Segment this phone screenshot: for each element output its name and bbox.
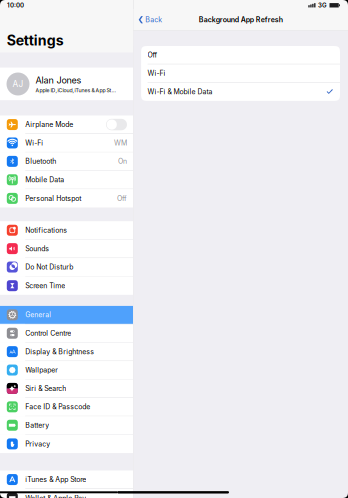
button[interactable]: Wallpaper [0,361,133,379]
button[interactable]: Notifications [0,221,133,240]
staticText: Sounds [25,244,49,253]
staticText: Back [145,15,162,24]
staticText: Face ID & Passcode [25,403,90,411]
staticText: Screen Time [25,281,65,290]
staticText: iTunes & App Store [25,475,86,484]
button[interactable]: Wi-Fi & Mobile Data [141,83,340,101]
button[interactable]: Sounds [0,240,133,258]
staticText: Wallpaper [25,366,58,374]
staticText: Notifications [25,226,67,234]
staticText: Personal Hotspot [25,194,81,203]
button[interactable]: Privacy [0,435,133,453]
staticText: Apple ID, iCloud, iTunes & App St… [35,87,115,93]
staticText: Mobile Data [25,176,64,184]
staticText: 3G [318,2,327,9]
button[interactable]: iTunes & App Store [0,471,133,489]
staticText: 10:00 [7,2,24,9]
staticText: AJ [12,79,23,89]
button[interactable]: Screen Time [0,276,133,295]
button[interactable]: Siri & Search [0,379,133,398]
button[interactable]: Mobile Data [0,171,133,189]
button[interactable]: Wi-Fi [141,64,340,83]
staticText: Airplane Mode [25,120,73,129]
staticText: Siri & Search [25,384,66,393]
staticText: On [118,157,127,166]
staticText: Alan Jones [35,75,81,86]
staticText: Background App Refresh [199,15,283,24]
staticText: Wi-Fi [148,69,166,77]
button[interactable]: Wallet & Apple Pay [0,489,133,498]
staticText: Do Not Disturb [25,263,73,271]
button[interactable]: Airplane Mode [0,116,133,134]
button[interactable]: Control Centre [0,324,133,343]
button[interactable]: Face ID & Passcode [0,398,133,416]
button[interactable]: Do Not Disturb [0,258,133,276]
button[interactable]: Back [134,12,166,27]
staticText: Settings [7,32,64,49]
staticText: Bluetooth [25,157,56,166]
staticText: Off [148,51,158,59]
staticText: Wallet & Apple Pay [25,494,86,498]
staticText: Privacy [25,440,50,448]
staticText: Off [117,194,127,203]
button[interactable]: Personal Hotspot [0,189,133,208]
button[interactable]: Display & Brightness [0,343,133,361]
button[interactable]: General [0,306,133,324]
staticText: General [25,311,51,319]
button[interactable]: Battery [0,416,133,435]
staticText: Battery [25,421,49,429]
staticText: Wi-Fi [25,139,43,147]
staticText: Wi-Fi & Mobile Data [148,88,213,96]
staticText: Display & Brightness [25,347,94,356]
staticText: Control Centre [25,329,71,337]
staticText: WM [114,139,127,147]
button[interactable]: AJ [0,68,133,100]
button[interactable]: Wi-Fi [0,134,133,152]
button[interactable]: Bluetooth [0,152,133,171]
button[interactable]: Off [141,46,340,64]
